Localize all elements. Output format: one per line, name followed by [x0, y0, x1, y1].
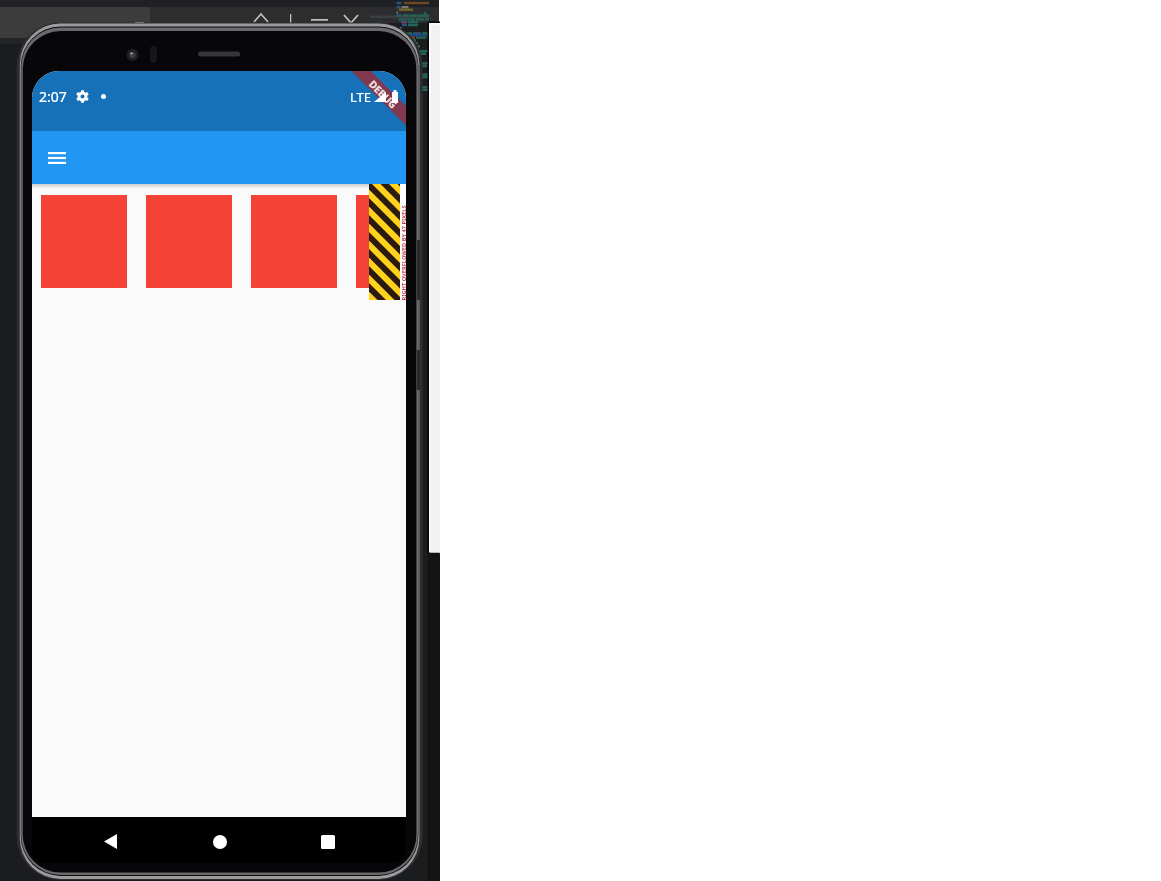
button[interactable]: Recent apps [305, 819, 350, 863]
staticText: RIGHT OVERFLOWED BY 47 PIXELS [399, 204, 406, 300]
button[interactable] [356, 195, 406, 288]
staticText: 2:07 [39, 87, 67, 106]
button[interactable]: Open navigation menu [38, 139, 76, 177]
staticText: DEBUG [366, 77, 401, 112]
staticText: LTE [350, 88, 372, 106]
button[interactable]: Home [197, 819, 242, 863]
button[interactable]: Back [88, 819, 133, 863]
